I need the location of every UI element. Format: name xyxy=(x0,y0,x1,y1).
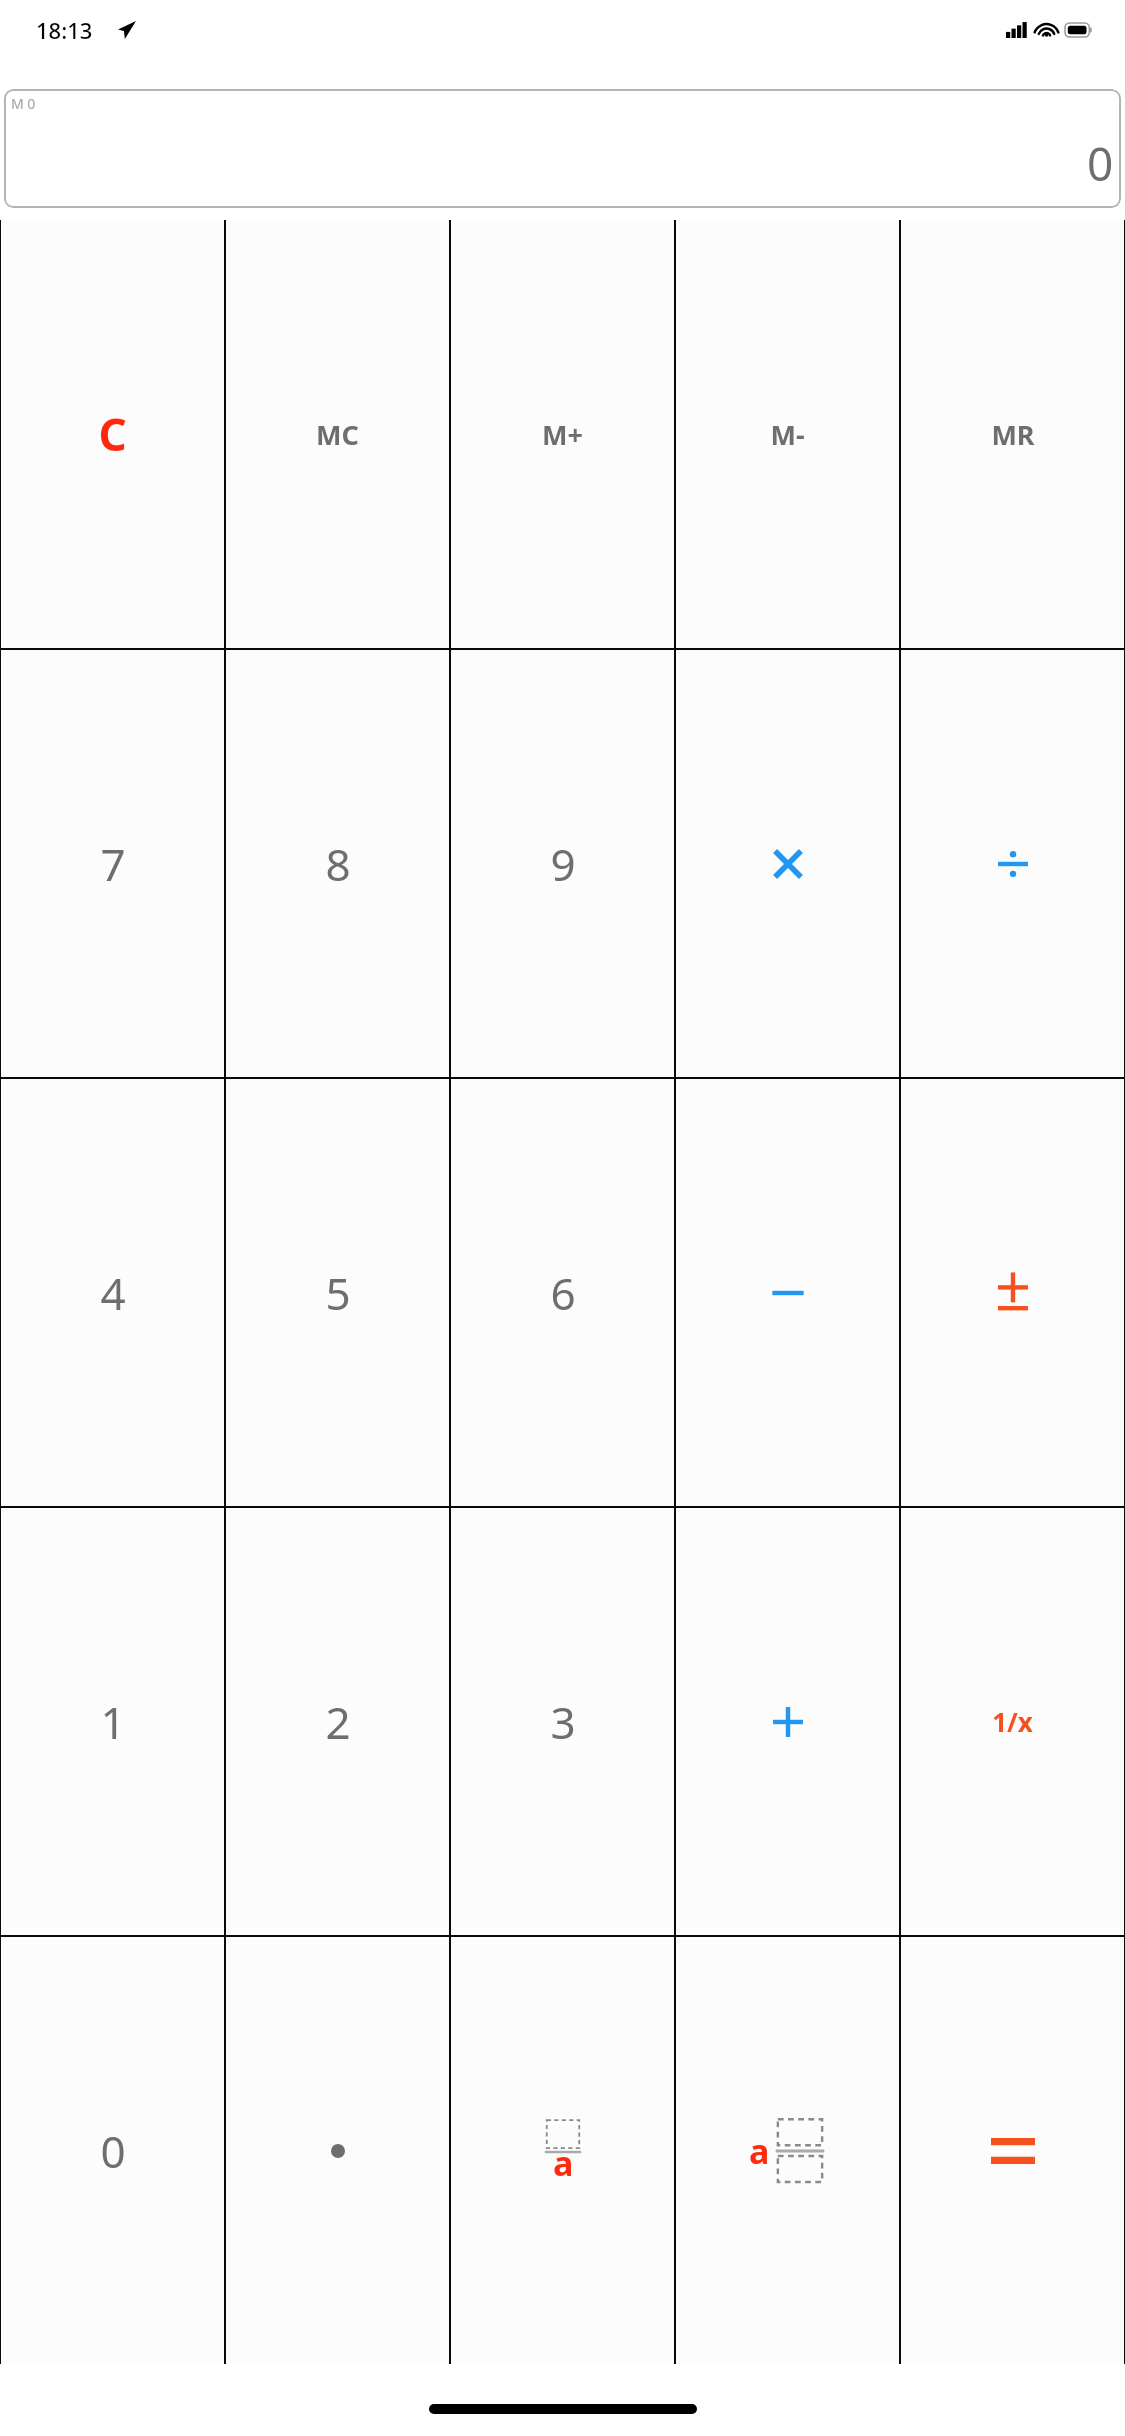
staticText: 9 xyxy=(550,834,576,894)
button[interactable]: Fraction xyxy=(451,1937,674,2364)
button[interactable]: Equals xyxy=(901,1937,1124,2364)
staticText: C xyxy=(98,404,127,464)
button[interactable]: 8 xyxy=(226,650,449,1077)
button[interactable]: M- xyxy=(676,220,899,648)
button[interactable]: 7 xyxy=(1,650,224,1077)
button[interactable]: Divide xyxy=(901,650,1124,1077)
button[interactable]: 5 xyxy=(226,1079,449,1506)
staticText: a xyxy=(749,2128,770,2174)
staticText: M 0 xyxy=(11,94,36,113)
button[interactable]: Minus xyxy=(676,1079,899,1506)
staticText: M+ xyxy=(542,416,583,453)
button[interactable]: 3 xyxy=(451,1508,674,1935)
staticText: MR xyxy=(991,416,1035,453)
button[interactable]: MC xyxy=(226,220,449,648)
button[interactable]: C xyxy=(1,220,224,648)
staticText: a xyxy=(553,2140,574,2186)
button[interactable]: M+ xyxy=(451,220,674,648)
staticText: 2 xyxy=(325,1692,351,1752)
button[interactable]: M 0 xyxy=(4,89,1121,208)
button[interactable]: 1 xyxy=(1,1508,224,1935)
staticText: 3 xyxy=(550,1692,576,1752)
button[interactable]: MR xyxy=(901,220,1124,648)
button[interactable]: Mixed number xyxy=(676,1937,899,2364)
staticText: 7 xyxy=(100,834,126,894)
button[interactable]: 4 xyxy=(1,1079,224,1506)
staticText: MC xyxy=(316,416,359,453)
staticText: M- xyxy=(770,416,805,453)
button[interactable]: Plus minus xyxy=(901,1079,1124,1506)
button[interactable]: 6 xyxy=(451,1079,674,1506)
staticText: 4 xyxy=(100,1263,126,1323)
staticText: 0 xyxy=(100,2121,126,2181)
button[interactable]: Plus xyxy=(676,1508,899,1935)
staticText: 0 xyxy=(1087,132,1114,195)
button[interactable]: Decimal point xyxy=(226,1937,449,2364)
staticText: 1 xyxy=(100,1692,126,1752)
button[interactable]: 9 xyxy=(451,650,674,1077)
button[interactable]: 1/x xyxy=(901,1508,1124,1935)
staticText: 6 xyxy=(550,1263,576,1323)
staticText: 1/x xyxy=(992,1704,1033,1739)
staticText: 8 xyxy=(325,834,351,894)
button[interactable]: 0 xyxy=(1,1937,224,2364)
staticText: 18:13 xyxy=(36,15,93,45)
button[interactable]: 2 xyxy=(226,1508,449,1935)
staticText: 5 xyxy=(325,1263,351,1323)
button[interactable]: Multiply xyxy=(676,650,899,1077)
